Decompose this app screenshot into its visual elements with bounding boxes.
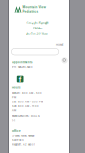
- staticText: Flagstaff, AZ 86001: [12, 143, 35, 146]
- staticText: 77 West Forest Avenue: [12, 134, 34, 137]
- staticText: EMERGENCIES: DIAL 9-: [12, 115, 40, 118]
- staticText: f: [19, 75, 22, 84]
- staticText: AM: [12, 109, 16, 112]
- staticText: HOME: [56, 43, 64, 46]
- staticText: 1-1: [12, 119, 15, 122]
- staticText: PH: 928-214-5600: [12, 66, 33, 68]
- staticText: Pediatrics: [22, 10, 38, 13]
- staticText: Office: [12, 130, 21, 133]
- button[interactable]: Search: [61, 57, 68, 63]
- staticText: for Over 20 Years.: [26, 32, 48, 35]
- staticText: Caring for Flagstaff's: [26, 21, 48, 24]
- staticText: Sat: 8:00 AM - 5:00 PM: [12, 100, 43, 103]
- staticText: Hours: [12, 86, 20, 89]
- button[interactable]: Search field: [11, 48, 59, 55]
- button[interactable]: Facebook: [17, 76, 23, 82]
- staticText: Suite 304: [12, 139, 24, 142]
- staticText: PM: [12, 96, 16, 99]
- staticText: Mountain View: [22, 5, 45, 9]
- staticText: Sun: 8:00 AM - 11:00: [12, 105, 39, 107]
- staticText: Appointments: [12, 61, 32, 64]
- staticText: Children: [33, 26, 42, 30]
- staticText: Mon-Fri: 8:00 AM - 5:00: [12, 92, 42, 95]
- button[interactable]: HOME: [50, 43, 64, 46]
